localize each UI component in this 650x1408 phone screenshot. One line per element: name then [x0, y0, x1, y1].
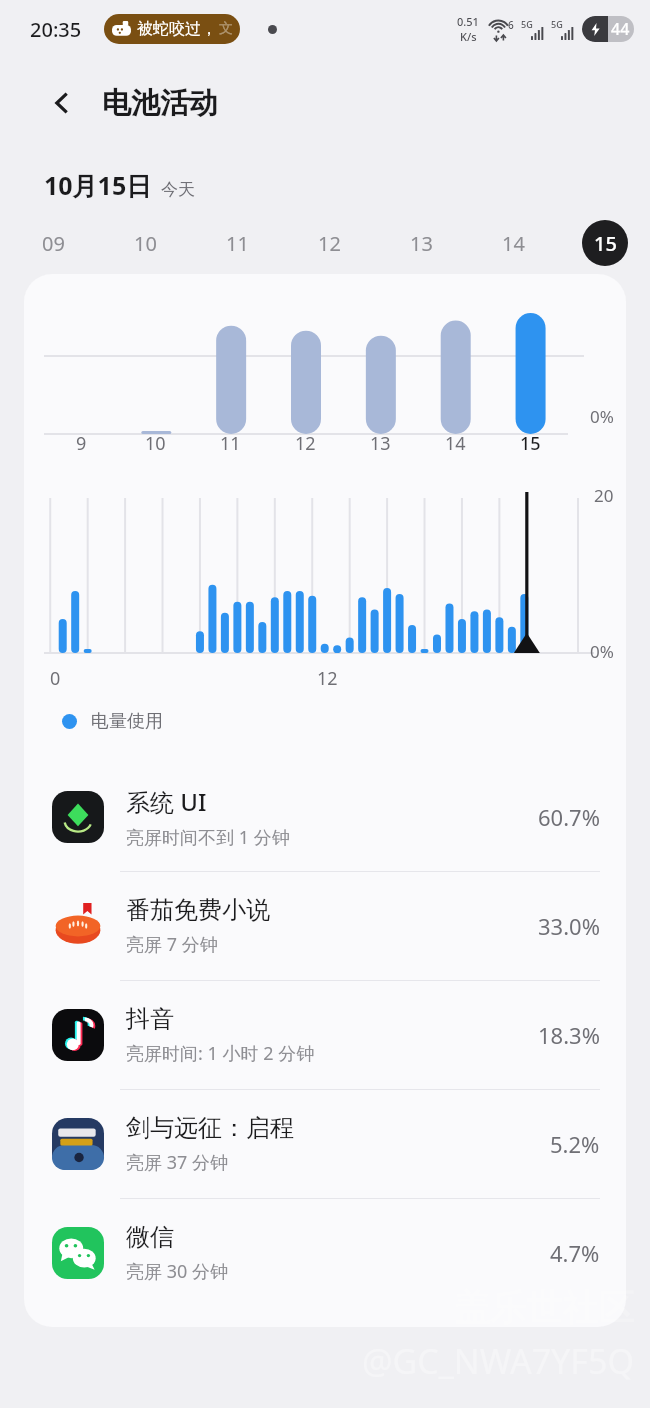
staticText: 5G [551, 18, 563, 30]
button[interactable]: 14 [490, 220, 536, 266]
staticText: 13 [370, 431, 391, 456]
staticText: 20:35 [30, 16, 82, 43]
staticText: 亮屏 37 分钟 [126, 1150, 228, 1175]
staticText: 5G [521, 18, 533, 30]
button[interactable]: 15 [582, 220, 628, 266]
button[interactable]: 番茄免费小说 [24, 872, 626, 980]
staticText: 10 [134, 230, 157, 257]
staticText: 文 [219, 20, 233, 38]
staticText: 4.7% [550, 1238, 600, 1268]
staticText: 番茄免费小说 [126, 895, 270, 925]
staticText: 12 [318, 230, 341, 257]
staticText: 6 [508, 18, 514, 32]
staticText: 被蛇咬过， [137, 19, 217, 39]
staticText: 11 [226, 230, 249, 257]
button[interactable]: 被蛇咬过， [104, 14, 240, 44]
staticText: 15 [520, 431, 541, 456]
button[interactable]: 抖音 [24, 981, 626, 1089]
staticText: 14 [445, 431, 466, 456]
staticText: 60.7% [538, 802, 600, 832]
staticText: 0% [590, 405, 614, 428]
staticText: 14 [502, 230, 525, 257]
staticText: 电量使用 [91, 710, 163, 733]
button[interactable]: 11 [214, 220, 260, 266]
staticText: 44 [611, 18, 630, 40]
staticText: 微信 [126, 1222, 174, 1252]
staticText: 盖乐世社区 [454, 1285, 634, 1330]
staticText: 亮屏时间: 1 小时 2 分钟 [126, 1041, 315, 1066]
staticText: 电池活动 [102, 85, 218, 122]
button[interactable]: 09 [30, 220, 76, 266]
staticText: 33.0% [538, 911, 600, 941]
staticText: 18.3% [538, 1020, 600, 1050]
staticText: 10月15日 [44, 168, 152, 202]
staticText: 9 [76, 431, 87, 456]
staticText: 0 [50, 666, 61, 691]
staticText: 亮屏 7 分钟 [126, 932, 218, 957]
staticText: 13 [410, 230, 433, 257]
staticText: 09 [42, 230, 65, 257]
staticText: 剑与远征：启程 [126, 1113, 294, 1143]
staticText: 0.51 [457, 14, 479, 29]
staticText: 抖音 [126, 1004, 174, 1034]
button[interactable]: Back [40, 81, 84, 125]
staticText: 今天 [161, 179, 195, 200]
button[interactable]: 10 [122, 220, 168, 266]
button[interactable]: 12 [306, 220, 352, 266]
staticText: 15 [594, 230, 617, 257]
staticText: 系统 UI [126, 785, 207, 818]
staticText: 12 [317, 666, 338, 691]
staticText: 亮屏时间不到 1 分钟 [126, 825, 290, 850]
staticText: 亮屏 30 分钟 [126, 1259, 228, 1284]
staticText: 0% [590, 640, 614, 663]
staticText: 11 [220, 431, 241, 456]
staticText: 5.2% [550, 1129, 600, 1159]
staticText: 20 [594, 484, 614, 507]
staticText: 12 [295, 431, 316, 456]
button[interactable]: 剑与远征：启程 [24, 1090, 626, 1198]
button[interactable]: 系统 UI [24, 763, 626, 871]
staticText: K/s [460, 29, 477, 44]
staticText: 10 [145, 431, 166, 456]
button[interactable]: 13 [398, 220, 444, 266]
button[interactable]: 微信 [24, 1199, 626, 1307]
